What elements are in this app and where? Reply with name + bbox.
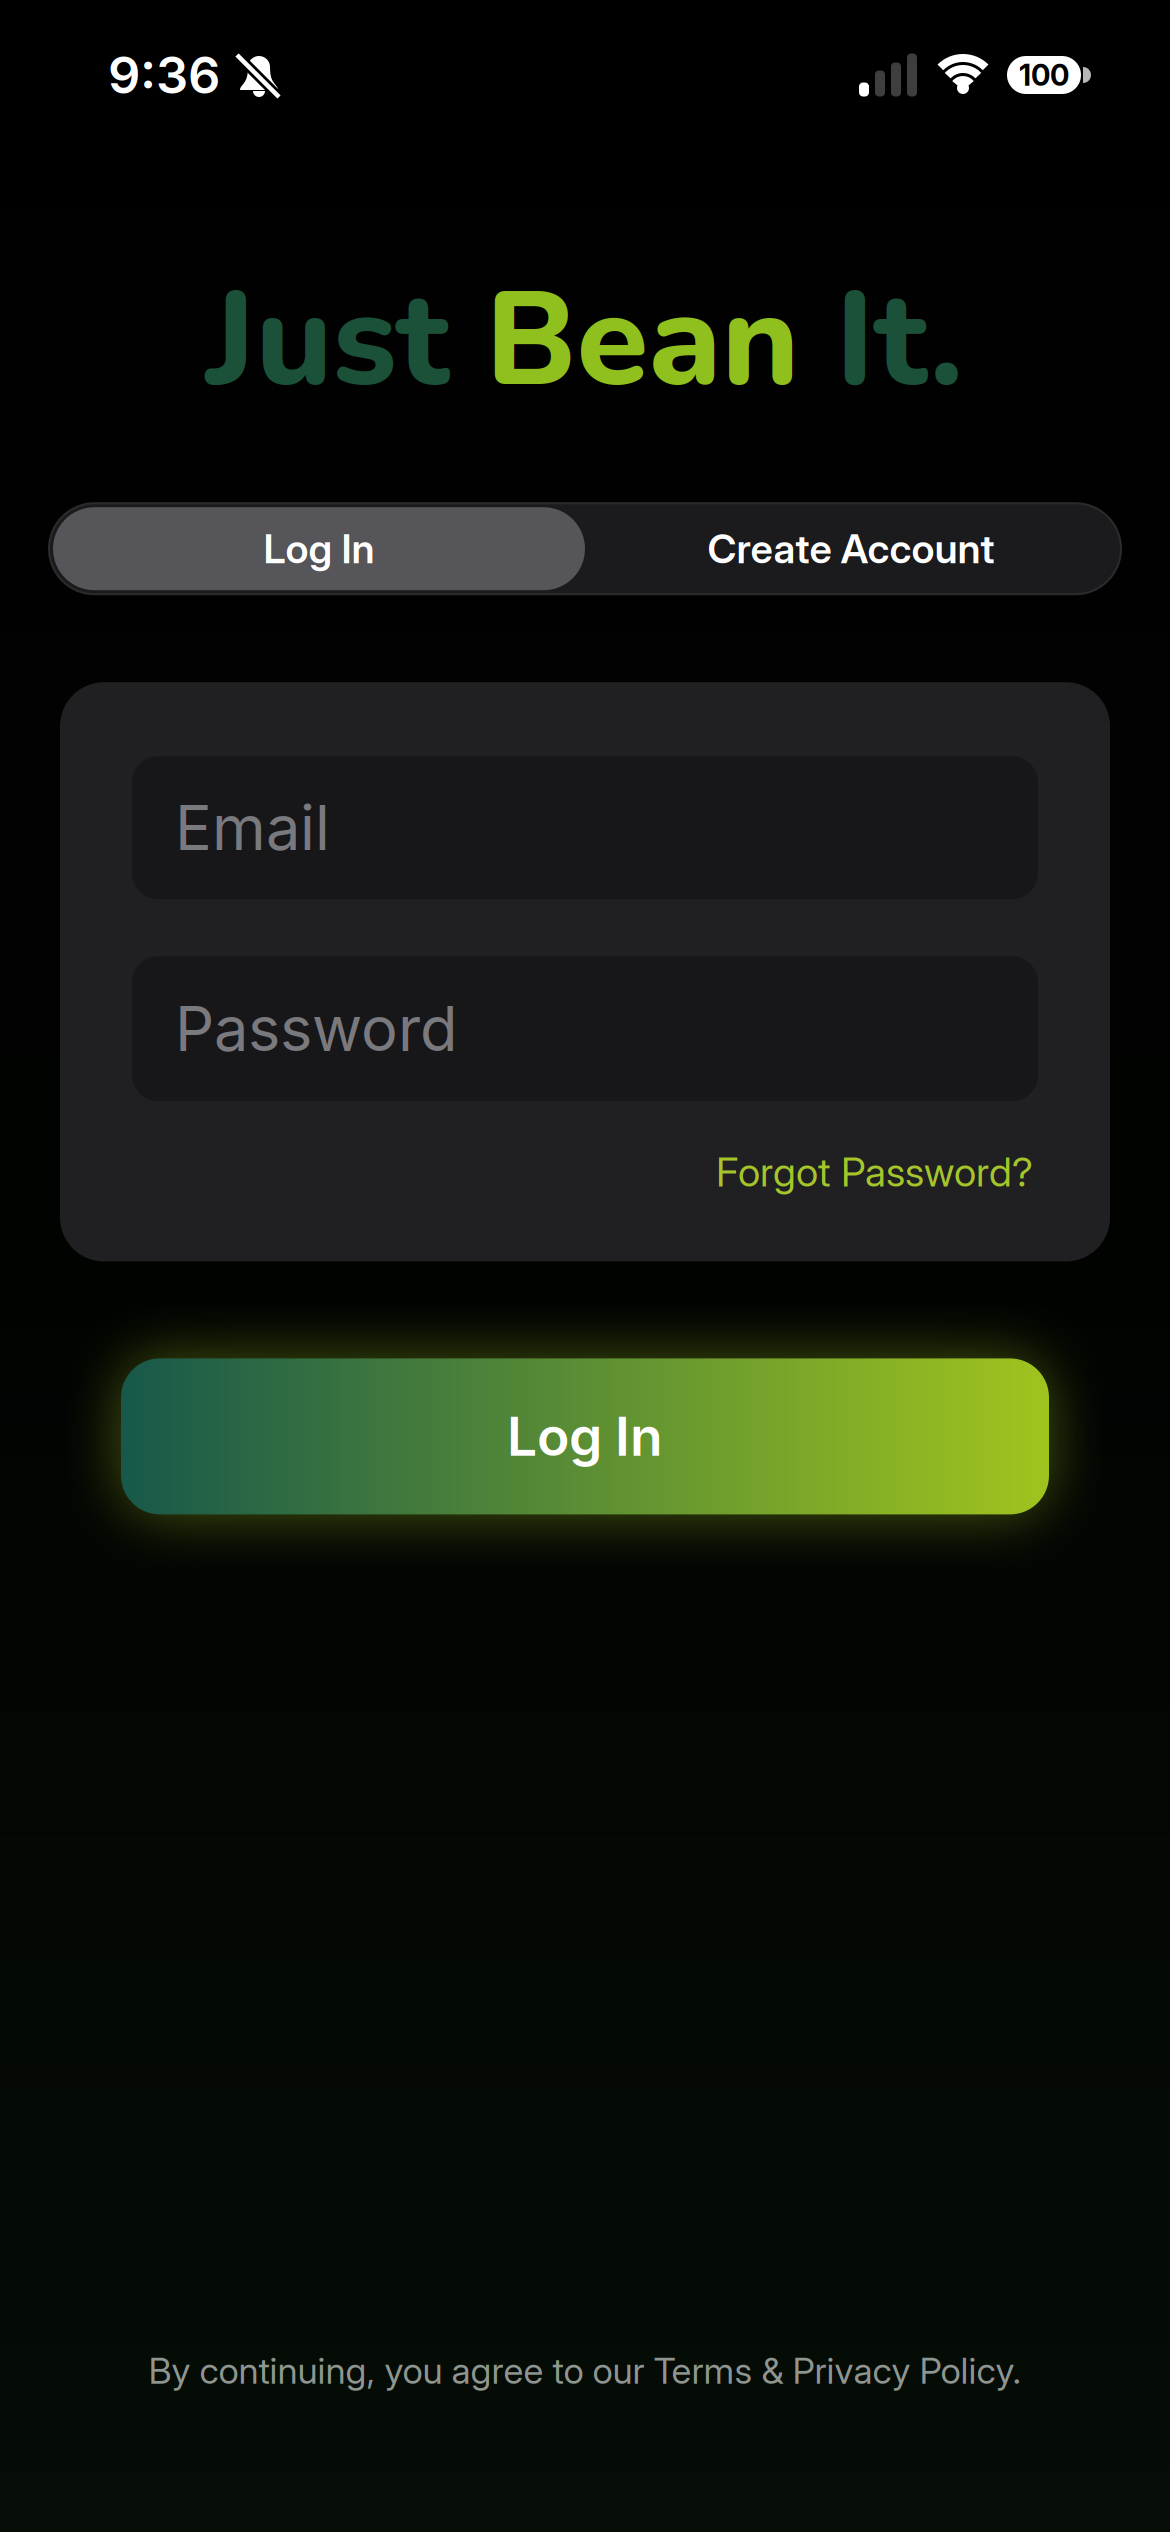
button[interactable]: By continuing, you agree to our Terms & … (148, 2349, 1021, 2392)
staticText: Create Account (707, 525, 994, 572)
staticText: 100 (1019, 58, 1069, 92)
button[interactable]: Email (132, 756, 1038, 899)
button[interactable]: Create Account (585, 507, 1117, 590)
staticText: Bean (485, 252, 799, 430)
staticText: Log In (263, 525, 374, 572)
staticText: It. (799, 252, 963, 430)
staticText: Log In (507, 1405, 663, 1468)
staticText: Email (175, 792, 330, 864)
button[interactable]: Log In (53, 507, 585, 590)
staticText: Just (206, 252, 485, 430)
staticText: Forgot Password? (716, 1148, 1033, 1195)
button[interactable]: Log In (121, 1358, 1049, 1514)
button[interactable]: Password (132, 956, 1038, 1101)
staticText: 9:36 (108, 45, 220, 105)
staticText: Password (175, 993, 458, 1065)
button[interactable]: Forgot Password? (716, 1148, 1033, 1195)
staticText: By continuing, you agree to our Terms & … (148, 2349, 1021, 2392)
